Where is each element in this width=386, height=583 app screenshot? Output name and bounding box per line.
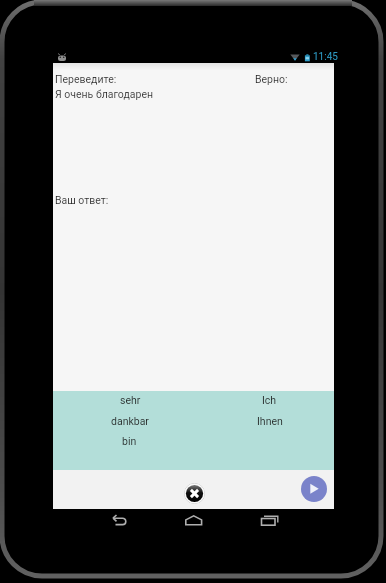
button[interactable]: dankbar — [80, 415, 180, 427]
button[interactable]: bin — [79, 435, 179, 447]
button[interactable] — [255, 510, 283, 530]
staticText: Ihnen — [257, 415, 283, 427]
staticText: Верно: — [255, 73, 288, 85]
staticText: sehr — [120, 394, 141, 406]
button[interactable] — [184, 483, 205, 504]
button[interactable] — [301, 476, 327, 502]
staticText: Переведите: — [55, 73, 117, 85]
staticText: bin — [122, 435, 137, 447]
button[interactable]: Ihnen — [220, 415, 320, 427]
staticText: Ich — [262, 394, 277, 406]
button[interactable]: Ich — [219, 394, 319, 406]
staticText: dankbar — [111, 415, 149, 427]
staticText: Ваш ответ: — [55, 194, 109, 206]
button[interactable]: sehr — [80, 394, 180, 406]
button[interactable] — [180, 510, 208, 530]
button[interactable] — [105, 510, 133, 530]
staticText: 11:45 — [313, 51, 338, 63]
staticText: Я очень благодарен — [55, 88, 154, 100]
